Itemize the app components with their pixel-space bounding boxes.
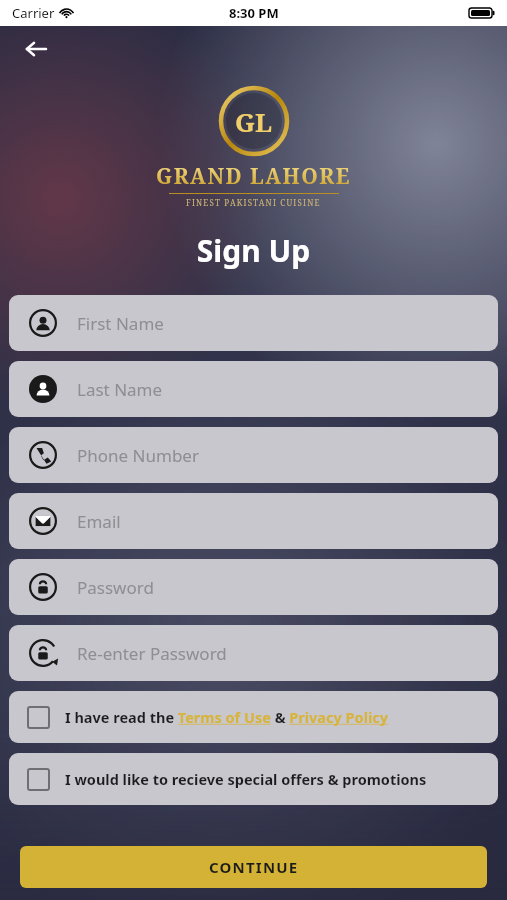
staticText: FINEST PAKISTANI CUISINE — [186, 197, 321, 208]
button[interactable]: First Name — [9, 295, 498, 351]
button[interactable]: Back — [16, 29, 56, 69]
staticText: Email — [77, 510, 121, 533]
button[interactable]: Re-enter Password — [9, 625, 498, 681]
button[interactable]: Email — [9, 493, 498, 549]
staticText: Password — [77, 576, 154, 599]
staticText: GRAND LAHORE — [156, 162, 351, 191]
button[interactable]: I would like to recieve special offers &… — [9, 753, 498, 805]
staticText: GL — [235, 104, 273, 139]
staticText: Carrier — [12, 4, 55, 22]
staticText: I have read the Terms of Use & Privacy P… — [65, 707, 389, 727]
button[interactable]: I have read the Terms of Use & Privacy P… — [9, 691, 498, 743]
staticText: Re-enter Password — [77, 642, 227, 665]
staticText: I would like to recieve special offers &… — [65, 769, 427, 789]
button[interactable]: Password — [9, 559, 498, 615]
staticText: Last Name — [77, 378, 163, 401]
staticText: Sign Up — [0, 230, 507, 271]
staticText: First Name — [77, 312, 164, 335]
button[interactable]: Last Name — [9, 361, 498, 417]
button[interactable]: CONTINUE — [20, 846, 487, 888]
staticText: Phone Number — [77, 444, 199, 467]
staticText: 8:30 PM — [229, 4, 279, 22]
button[interactable]: Phone Number — [9, 427, 498, 483]
staticText: CONTINUE — [209, 857, 299, 877]
